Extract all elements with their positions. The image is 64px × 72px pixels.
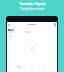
staticText: Single line chats xyxy=(20,7,45,11)
staticText: Translate Urgent xyxy=(19,2,46,6)
